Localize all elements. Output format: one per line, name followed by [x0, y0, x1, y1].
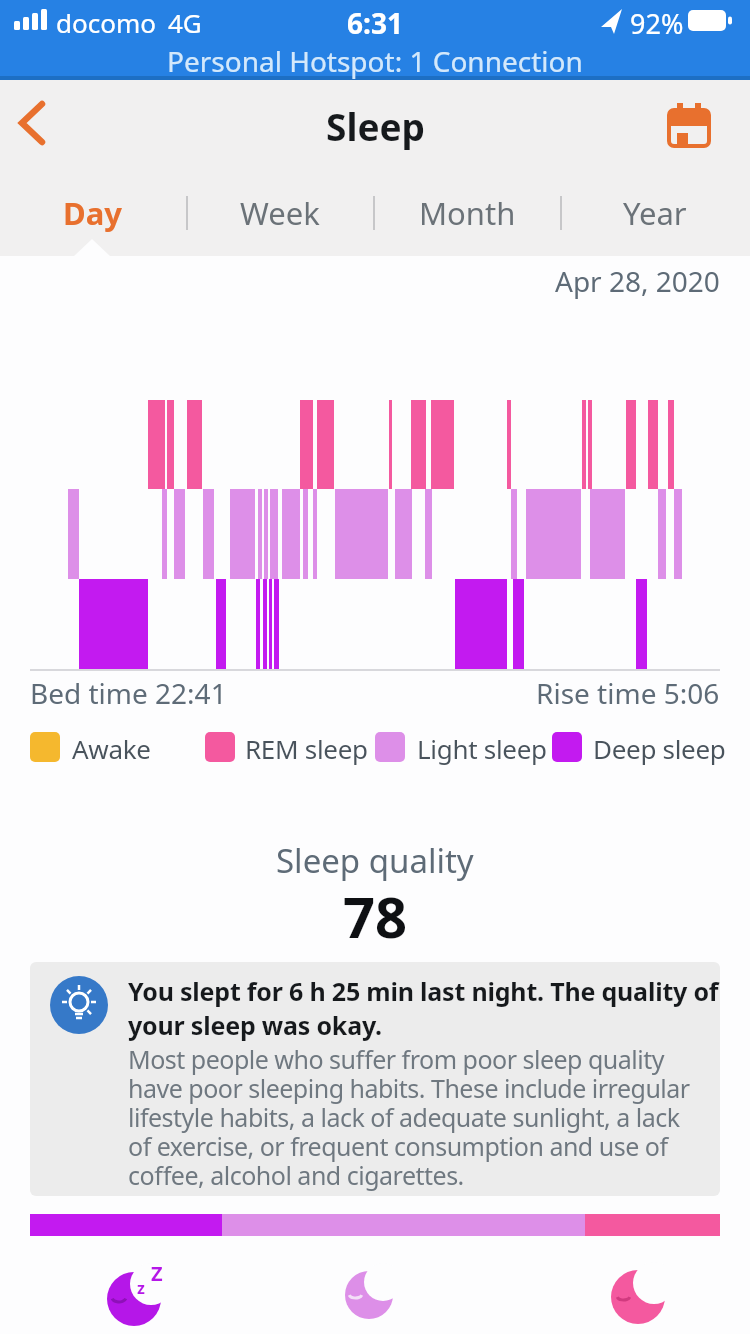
staticText: Most people who suffer from poor sleep q…: [128, 1042, 690, 1192]
staticText: Year: [623, 192, 687, 234]
staticText: Bed time 22:41: [30, 674, 227, 712]
button[interactable]: Day: [32, 186, 152, 240]
staticText: Z: [151, 1260, 163, 1287]
staticText: docomo: [56, 5, 156, 40]
staticText: Light sleep: [417, 731, 547, 766]
button[interactable]: Year: [595, 186, 715, 240]
staticText: Deep sleep: [593, 731, 726, 766]
staticText: Apr 28, 2020: [555, 262, 720, 300]
staticText: Month: [419, 192, 516, 234]
staticText: 6:31: [347, 4, 403, 42]
staticText: Week: [240, 192, 320, 234]
staticText: Sleep quality: [276, 838, 474, 883]
button[interactable]: [8, 92, 64, 152]
staticText: Rise time 5:06: [536, 674, 720, 712]
staticText: Day: [63, 192, 122, 234]
staticText: Awake: [72, 731, 151, 766]
button[interactable]: Month: [407, 186, 527, 240]
staticText: REM sleep: [245, 731, 368, 766]
staticText: Personal Hotspot: 1 Connection: [167, 42, 583, 80]
staticText: 92%: [630, 5, 684, 42]
staticText: Sleep: [326, 101, 425, 151]
staticText: You slept for 6 h 25 min last night. The…: [128, 974, 719, 1043]
button[interactable]: [662, 98, 718, 154]
staticText: 4G: [168, 5, 202, 40]
button[interactable]: Week: [220, 186, 340, 240]
staticText: z: [137, 1277, 145, 1299]
staticText: 78: [343, 878, 408, 954]
